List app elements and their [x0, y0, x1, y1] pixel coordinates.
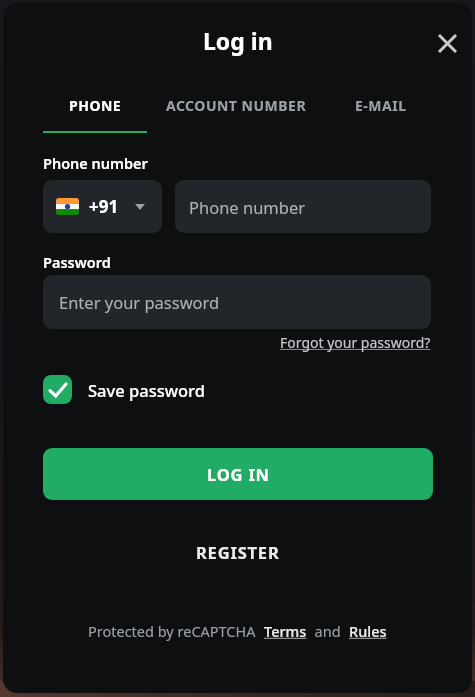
button[interactable]: PHONE	[43, 89, 147, 121]
button[interactable]: Terms	[264, 621, 307, 641]
button[interactable]: LOG IN	[43, 448, 433, 500]
staticText: Phone number	[43, 153, 148, 173]
staticText: Save password	[88, 379, 205, 401]
button[interactable]: Phone number	[175, 180, 431, 233]
button[interactable]: E-MAIL	[339, 89, 423, 121]
staticText: Protected by reCAPTCHA	[88, 621, 264, 641]
staticText: Log in	[203, 25, 273, 56]
button[interactable]: REGISTER	[196, 541, 280, 563]
staticText: ACCOUNT NUMBER	[166, 96, 307, 115]
button[interactable]: Forgot your password?	[280, 333, 431, 352]
staticText: +91	[89, 195, 119, 218]
button[interactable]: +91	[43, 180, 162, 233]
button[interactable]	[430, 26, 464, 60]
staticText: LOG IN	[207, 463, 270, 485]
button[interactable]: Enter your password	[43, 275, 431, 329]
staticText: Enter your password	[59, 291, 220, 313]
button[interactable]: ACCOUNT NUMBER	[158, 89, 314, 121]
staticText: Password	[43, 252, 111, 272]
button[interactable]: Save password	[43, 375, 205, 404]
staticText: and	[307, 621, 349, 641]
button[interactable]: Rules	[349, 621, 387, 641]
staticText: Phone number	[189, 196, 306, 218]
staticText: E-MAIL	[355, 96, 407, 115]
staticText: PHONE	[69, 96, 122, 115]
